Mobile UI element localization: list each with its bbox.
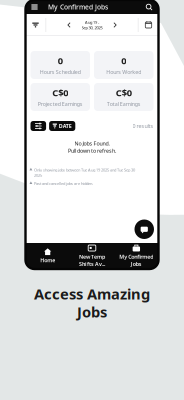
staticText: New Temp [79,253,105,260]
staticText: Shifts Av... [79,260,105,267]
staticText: My Confirmed [119,253,153,260]
button[interactable]: Filter [25,14,45,35]
staticText: C$0 [116,86,132,99]
staticText: Projected Earnings [38,100,83,107]
staticText: 0 results [132,122,153,130]
staticText: C$0 [52,86,68,99]
staticText: Home [40,257,55,264]
staticText: Jobs [77,302,107,321]
staticText: Sep 30, 2025 [81,25,102,30]
staticText: Only showing jobs between Tue Aug 19 202… [34,167,135,178]
staticText: Hours Worked [106,68,141,75]
button[interactable]: Filters [30,121,46,131]
button[interactable]: Search [142,0,156,13]
button[interactable]: New Temp [70,245,114,267]
staticText: DATE [59,122,72,130]
staticText: Pull down to refresh. [68,147,116,154]
button[interactable]: Pick dates [138,14,158,35]
button[interactable]: Home [25,245,70,267]
button[interactable]: Next period [109,14,121,35]
button[interactable]: My Confirmed [114,245,158,267]
staticText: My Confirmed Jobs [48,3,108,11]
staticText: Past and cancelled jobs are hidden. [34,181,93,186]
button[interactable]: Previous period [63,14,75,35]
staticText: Total Earnings [107,100,141,107]
staticText: No Jobs Found. [74,140,109,147]
staticText: Access Amazing [34,284,150,303]
staticText: Aug 19 - [85,19,99,25]
staticText: Hours Scheduled [40,68,81,75]
staticText: 0 [58,54,63,67]
staticText: 0 [121,54,126,67]
button[interactable]: Chat [134,219,154,239]
button[interactable]: Menu [28,0,41,13]
button[interactable]: DATE [49,121,75,131]
staticText: Jobs [131,260,142,267]
